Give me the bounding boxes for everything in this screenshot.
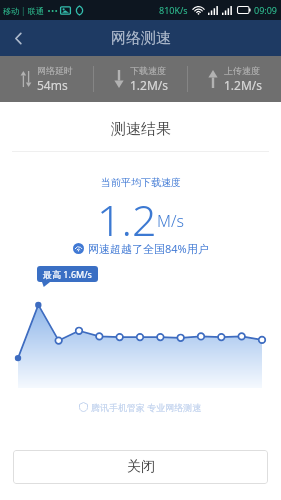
staticText: 网络测速 (111, 29, 171, 48)
staticText: 最高 1.6M/s (43, 268, 92, 280)
button[interactable]: 网络延时 (0, 56, 93, 102)
staticText: 腾讯手机管家 专业网络测速 (91, 401, 202, 413)
staticText: 54ms (37, 77, 68, 93)
button[interactable]: 上传速度 (188, 56, 281, 102)
button[interactable]: 最高 1.6M/s (37, 266, 98, 282)
staticText: 1.2M/s (224, 77, 263, 93)
staticText: 09:09 (254, 4, 278, 16)
staticText: 1.2M/s (130, 77, 169, 93)
staticText: 联通 (28, 6, 44, 16)
staticText: 网络延时 (37, 65, 73, 76)
staticText: 上传速度 (224, 65, 260, 76)
staticText: 810K/s (159, 4, 188, 16)
staticText: 1.2 (97, 190, 157, 238)
button[interactable]: Back (0, 20, 36, 56)
button[interactable]: 下载速度 (94, 56, 187, 102)
staticText: M/s (157, 210, 184, 232)
button[interactable]: 关闭 (13, 450, 268, 484)
staticText: 测速结果 (111, 120, 171, 139)
staticText: | (19, 5, 28, 16)
staticText: 移动 (3, 6, 19, 16)
staticText: 下载速度 (130, 65, 166, 76)
staticText: 关闭 (127, 458, 155, 476)
staticText: 网速超越了全国84%用户 (88, 241, 209, 256)
staticText: 当前平均下载速度 (101, 176, 181, 189)
